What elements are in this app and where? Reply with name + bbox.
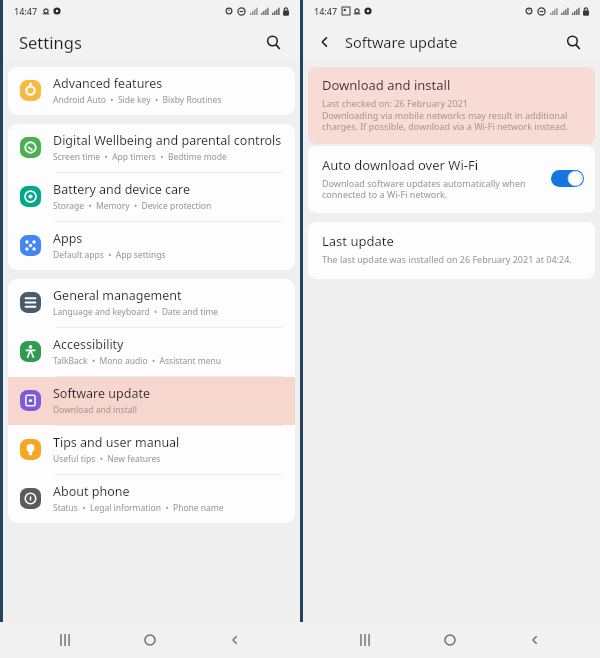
staticText: Tips and user manual bbox=[53, 434, 180, 451]
button[interactable]: Accessibility bbox=[8, 328, 295, 376]
staticText: Download software updates automatically … bbox=[322, 177, 543, 201]
button[interactable]: Battery and device care bbox=[8, 173, 295, 221]
button[interactable]: Tips and user manual bbox=[8, 426, 295, 474]
staticText: Status • Legal information • Phone name bbox=[53, 502, 224, 514]
staticText: Apps bbox=[53, 230, 83, 247]
staticText: Auto download over Wi-Fi bbox=[322, 156, 479, 174]
staticText: Screen time • App timers • Bedtime mode bbox=[53, 151, 227, 163]
button[interactable]: Auto download over Wi-Fi bbox=[551, 170, 584, 187]
staticText: Download and install bbox=[322, 76, 451, 94]
staticText: Settings bbox=[19, 31, 259, 53]
staticText: Language and keyboard • Date and time bbox=[53, 306, 219, 318]
button[interactable]: Search bbox=[259, 28, 287, 56]
staticText: Default apps • App settings bbox=[53, 249, 166, 261]
button[interactable]: Recents bbox=[45, 622, 85, 658]
staticText: Useful tips • New features bbox=[53, 453, 161, 465]
staticText: Last update bbox=[322, 232, 394, 250]
staticText: Downloading via mobile networks may resu… bbox=[322, 109, 581, 133]
staticText: Advanced features bbox=[53, 75, 163, 92]
staticText: Digital Wellbeing and parental controls bbox=[53, 132, 282, 149]
button[interactable]: Advanced features bbox=[8, 67, 295, 115]
button[interactable]: General management bbox=[8, 279, 295, 327]
button[interactable]: About phone bbox=[8, 475, 295, 523]
staticText: Download and install bbox=[53, 404, 137, 416]
staticText: 14:47 bbox=[314, 5, 338, 17]
staticText: General management bbox=[53, 287, 182, 304]
button[interactable]: Back bbox=[312, 29, 338, 55]
button[interactable]: Software update bbox=[8, 377, 295, 425]
button[interactable]: Back bbox=[215, 622, 255, 658]
staticText: TalkBack • Mono audio • Assistant menu bbox=[53, 355, 222, 367]
button[interactable]: Back bbox=[515, 622, 555, 658]
staticText: Last checked on: 26 February 2021 bbox=[322, 97, 468, 109]
staticText: The last update was installed on 26 Febr… bbox=[322, 253, 572, 265]
button[interactable]: Apps bbox=[8, 222, 295, 270]
button[interactable]: Download and install bbox=[308, 67, 595, 144]
button[interactable]: Search bbox=[559, 28, 587, 56]
staticText: Software update bbox=[345, 32, 559, 52]
button[interactable]: Last update bbox=[308, 222, 595, 279]
staticText: About phone bbox=[53, 483, 130, 500]
button[interactable]: Recents bbox=[345, 622, 385, 658]
button[interactable]: Home bbox=[430, 622, 470, 658]
button[interactable]: Auto download over Wi-Fi bbox=[308, 146, 595, 213]
staticText: Accessibility bbox=[53, 336, 124, 353]
button[interactable]: Digital Wellbeing and parental controls bbox=[8, 124, 295, 172]
staticText: Storage • Memory • Device protection bbox=[53, 200, 212, 212]
staticText: Android Auto • Side key • Bixby Routines bbox=[53, 94, 222, 106]
staticText: Battery and device care bbox=[53, 181, 191, 198]
button[interactable]: Home bbox=[130, 622, 170, 658]
staticText: Software update bbox=[53, 385, 150, 402]
staticText: 14:47 bbox=[14, 5, 38, 17]
